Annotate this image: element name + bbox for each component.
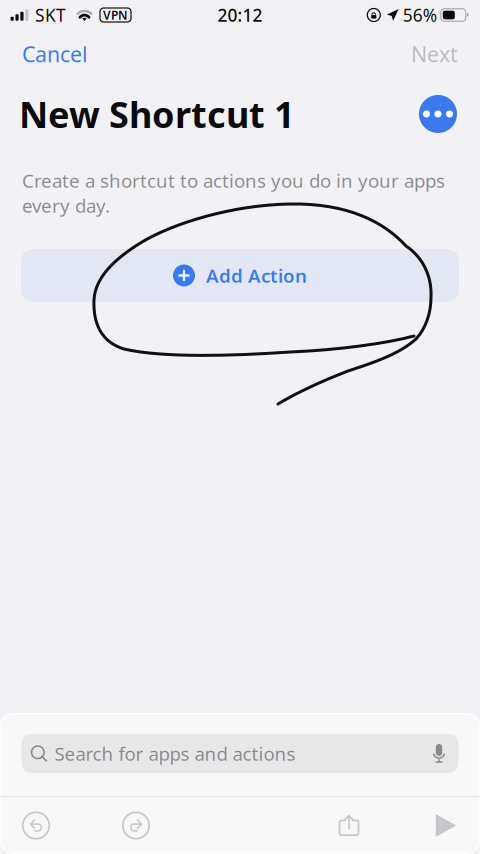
staticText: 56% (403, 3, 437, 26)
button[interactable]: Next (405, 33, 464, 75)
button[interactable]: Run (424, 803, 468, 847)
button[interactable]: Add Action (21, 249, 459, 302)
staticText: New Shortcut 1 (19, 90, 295, 138)
staticText: Cancel (22, 40, 88, 68)
staticText: Search for apps and actions (54, 741, 295, 766)
staticText: Next (411, 40, 458, 68)
staticText: 20:12 (217, 3, 262, 26)
staticText: SKT (35, 3, 66, 26)
button[interactable]: More options (416, 92, 460, 136)
button[interactable]: Cancel (16, 33, 94, 75)
staticText: Create a shortcut to actions you do in y… (22, 168, 445, 218)
button[interactable]: Share (327, 803, 371, 847)
button[interactable]: Redo (114, 803, 158, 847)
staticText: VPN (103, 7, 128, 23)
button[interactable]: Undo (14, 803, 58, 847)
staticText: Add Action (206, 263, 307, 288)
